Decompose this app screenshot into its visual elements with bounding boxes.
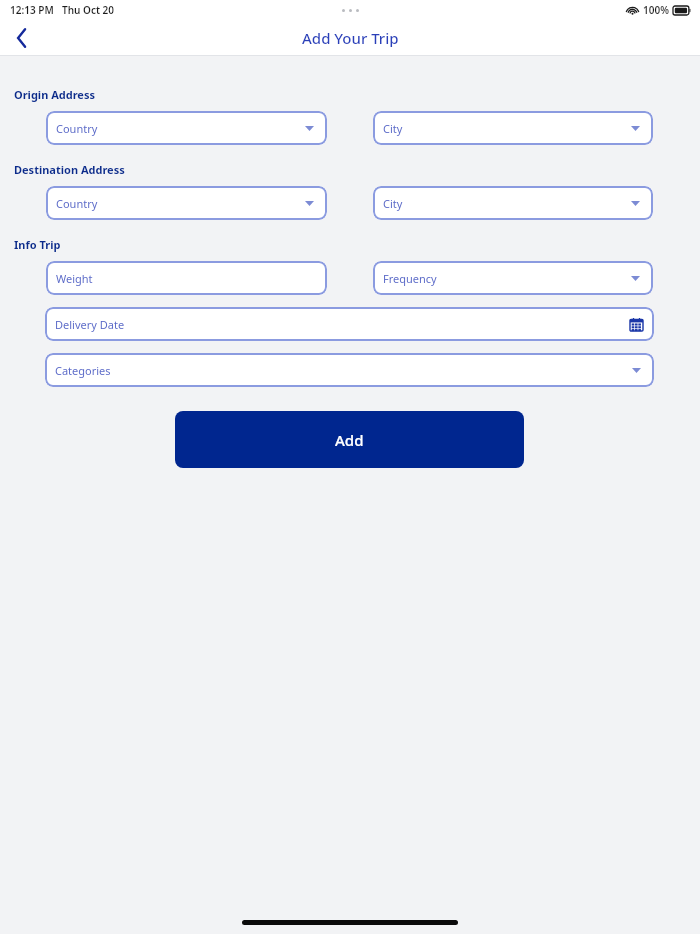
button[interactable]: Weight <box>46 261 327 295</box>
staticText: Frequency <box>383 271 437 286</box>
button[interactable]: City <box>373 111 653 145</box>
staticText: Add <box>335 430 364 450</box>
staticText: Delivery Date <box>55 317 125 332</box>
staticText: 100% <box>643 3 669 17</box>
button[interactable]: Add <box>175 411 524 468</box>
staticText: Country <box>56 196 98 211</box>
button[interactable]: Delivery Date <box>45 307 654 341</box>
staticText: Add Your Trip <box>302 28 399 48</box>
staticText: Country <box>56 121 98 136</box>
button[interactable]: Back <box>0 20 44 55</box>
staticText: City <box>383 196 403 211</box>
staticText: Categories <box>55 363 111 378</box>
staticText: 12:13 PM <box>10 3 54 17</box>
staticText: City <box>383 121 403 136</box>
staticText: Weight <box>56 271 93 286</box>
staticText: Origin Address <box>14 87 95 102</box>
staticText: Thu Oct 20 <box>62 3 115 17</box>
staticText: Destination Address <box>14 162 125 177</box>
button[interactable]: Country <box>46 111 327 145</box>
staticText: Info Trip <box>14 237 61 252</box>
button[interactable]: Country <box>46 186 327 220</box>
button[interactable]: Categories <box>45 353 654 387</box>
button[interactable]: City <box>373 186 653 220</box>
button[interactable]: Frequency <box>373 261 653 295</box>
